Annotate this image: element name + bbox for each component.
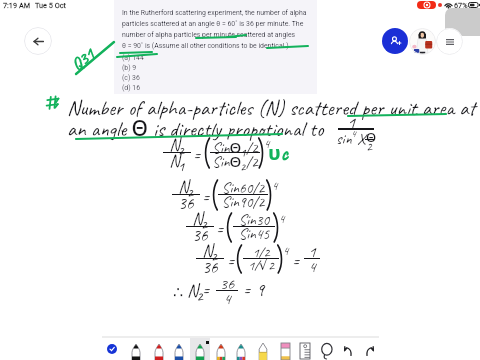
staticText: Sin60/2: [218, 179, 268, 198]
staticText: (b) 9: [122, 64, 137, 72]
staticText: Tue 5 Oct: [35, 1, 66, 10]
staticText: N₂: [187, 280, 204, 303]
staticText: 1/2: [243, 244, 279, 262]
staticText: =: [202, 187, 210, 208]
staticText: 4: [216, 289, 238, 309]
staticText: N₂: [186, 209, 214, 230]
button[interactable]: Invite people: [382, 28, 408, 54]
staticText: (a) 144: [122, 54, 144, 62]
staticText: 4: [264, 136, 270, 151]
staticText: 1: [347, 112, 356, 135]
button[interactable]: Account: [409, 28, 436, 55]
staticText: =: [193, 145, 201, 166]
button[interactable]: Pen: [173, 338, 188, 360]
staticText: X: [357, 129, 366, 149]
staticText: Sin30: [233, 211, 275, 230]
staticText: N₁: [163, 151, 191, 172]
staticText: sin: [336, 129, 352, 149]
staticText: Θ: [366, 128, 377, 146]
staticText: Q31: [67, 44, 99, 75]
staticText: υc: [268, 139, 288, 166]
staticText: (c) 36: [122, 74, 140, 82]
staticText: an angle Θ is directly propotional to: [67, 114, 324, 143]
staticText: In the Rutherford scattering experiment,…: [122, 9, 307, 17]
staticText: =: [292, 251, 300, 272]
button[interactable]: Undo: [341, 338, 355, 360]
button[interactable]: Menu: [436, 28, 463, 55]
button[interactable]: Back: [24, 27, 52, 55]
button[interactable]: Pen: [153, 338, 168, 360]
staticText: Number of alpha-particles (N) scattered …: [67, 95, 476, 121]
staticText: 1/√2: [243, 257, 279, 275]
staticText: =: [227, 251, 235, 272]
staticText: 1: [304, 242, 320, 262]
button[interactable]: Pen: [235, 338, 250, 360]
staticText: =: [202, 280, 210, 301]
button[interactable]: Eraser: [279, 338, 293, 360]
button[interactable]: Highlighter: [257, 338, 271, 360]
staticText: 4: [304, 257, 320, 277]
staticText: 2: [366, 139, 372, 155]
button[interactable]: Lasso select: [319, 338, 335, 360]
staticText: N₂: [196, 241, 224, 262]
staticText: =: [216, 219, 224, 240]
button[interactable]: Pen: [194, 338, 209, 360]
button[interactable]: Pen: [130, 338, 145, 360]
staticText: N₂: [163, 135, 191, 156]
staticText: ∴: [173, 283, 184, 302]
button[interactable]: Pen: [215, 338, 230, 360]
staticText: 4: [279, 211, 285, 226]
staticText: 36: [186, 225, 214, 246]
staticText: Sin45: [233, 225, 275, 244]
staticText: (d) 16: [122, 84, 141, 92]
staticText: 7:19 AM: [3, 1, 31, 10]
staticText: 36: [172, 193, 200, 214]
staticText: number of alpha particles per minute sca…: [122, 31, 296, 39]
staticText: 36: [216, 274, 238, 294]
button[interactable]: Screen recording: [417, 1, 436, 9]
staticText: SinΘ₁/2: [210, 137, 260, 158]
staticText: =: [243, 280, 251, 301]
staticText: 36: [196, 257, 224, 278]
staticText: 4: [351, 126, 356, 140]
staticText: 4: [283, 243, 289, 258]
staticText: N₂: [172, 177, 200, 198]
staticText: SinΘ₂/2: [210, 151, 260, 172]
staticText: particles scattered at an angle θ = 60˚ …: [122, 20, 304, 28]
staticText: θ = 90˚ is (Assume all other conditions …: [122, 42, 289, 50]
staticText: 67%: [454, 1, 468, 10]
staticText: 4: [272, 178, 278, 193]
button[interactable]: Ruler: [299, 338, 313, 360]
button[interactable]: Redo: [363, 338, 377, 360]
staticText: 9: [256, 279, 265, 302]
button[interactable]: Done: [107, 344, 117, 354]
staticText: Sin90/2: [218, 193, 268, 212]
